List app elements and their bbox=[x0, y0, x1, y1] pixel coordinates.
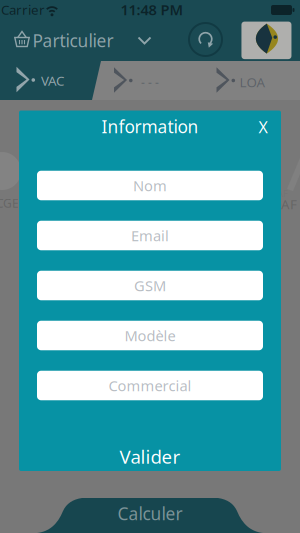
button[interactable]: Close bbox=[250, 114, 276, 140]
staticText: Modèle bbox=[124, 326, 175, 345]
staticText: Nom bbox=[133, 176, 167, 195]
button[interactable]: Email bbox=[37, 221, 263, 250]
button[interactable]: Particulier bbox=[5, 28, 155, 52]
staticText: Valider bbox=[119, 444, 180, 469]
button[interactable]: LOA bbox=[210, 60, 300, 100]
staticText: X bbox=[258, 116, 267, 138]
staticText: VAC bbox=[41, 72, 64, 89]
button[interactable]: Refresh bbox=[187, 21, 223, 57]
staticText: AF bbox=[277, 187, 288, 200]
staticText: Particulier bbox=[32, 29, 113, 52]
staticText: Carrier bbox=[1, 1, 45, 18]
staticText: DAF bbox=[272, 195, 297, 213]
button[interactable]: Modèle bbox=[37, 321, 263, 350]
button[interactable]: VAC bbox=[10, 60, 100, 100]
staticText: Calculer bbox=[117, 502, 182, 525]
staticText: GSM bbox=[134, 276, 166, 295]
button[interactable]: Nom bbox=[37, 171, 263, 200]
button[interactable]: GSM bbox=[37, 271, 263, 300]
staticText: Commercial bbox=[108, 376, 191, 395]
staticText: CGE bbox=[0, 195, 19, 211]
staticText: 11:48 PM bbox=[120, 0, 183, 19]
button[interactable]: Commercial bbox=[37, 371, 263, 400]
staticText: - - - bbox=[141, 74, 159, 90]
button[interactable]: - - - bbox=[107, 60, 197, 100]
button[interactable]: Valider bbox=[100, 441, 200, 471]
staticText: LOA bbox=[239, 73, 265, 91]
staticText: Information bbox=[101, 115, 198, 138]
button[interactable]: Calculer bbox=[37, 498, 263, 533]
staticText: Email bbox=[131, 226, 169, 245]
